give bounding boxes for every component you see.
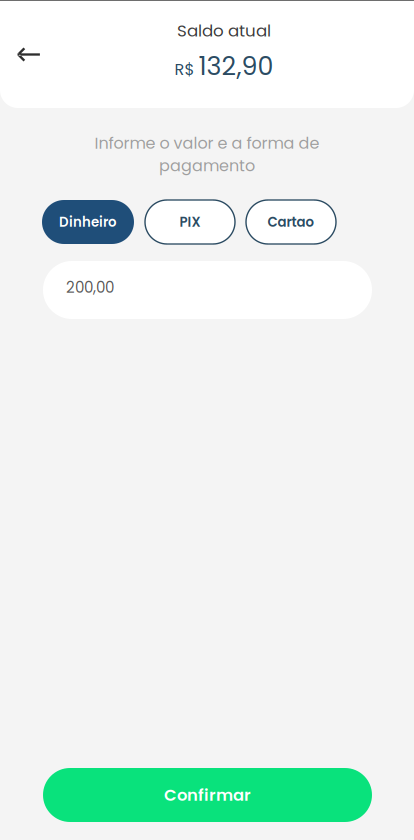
staticText: Cartao: [267, 213, 314, 231]
staticText: Confirmar: [164, 783, 251, 806]
staticText: Saldo atual: [177, 19, 271, 42]
staticText: 200,00: [66, 277, 114, 298]
button[interactable]: 200,00: [43, 261, 372, 319]
button[interactable]: Confirmar: [43, 768, 372, 822]
staticText: pagamento: [159, 154, 255, 177]
button[interactable]: Back: [6, 33, 50, 77]
staticText: 132,90: [198, 48, 273, 84]
button[interactable]: Cartao: [246, 200, 336, 244]
staticText: R$: [174, 58, 194, 80]
staticText: PIX: [179, 213, 200, 231]
button[interactable]: Dinheiro: [42, 200, 134, 244]
staticText: Informe o valor e a forma de: [94, 132, 319, 154]
button[interactable]: PIX: [145, 200, 235, 244]
staticText: Dinheiro: [59, 213, 117, 231]
